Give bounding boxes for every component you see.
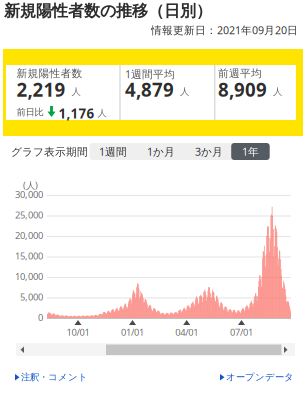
staticText: 1週間 [99,144,127,159]
button[interactable]: Scroll chart horizontally [16,343,295,356]
staticText: 人 [71,86,80,97]
staticText: 人 [273,86,282,97]
staticText: 2,219 [16,77,65,102]
staticText: 30,000 [15,188,43,201]
staticText: 人 [180,86,189,97]
button[interactable]: 1年 [231,143,270,160]
staticText: 前週平均 [218,67,262,80]
staticText: 5,000 [20,291,43,303]
staticText: 新規陽性者数 [16,67,82,80]
staticText: 4,879 [125,77,174,102]
staticText: 1週間平均 [125,67,175,81]
button[interactable]: 3か月 [187,143,231,160]
staticText: (人) [23,179,38,191]
staticText: 1,176 [58,104,94,122]
button[interactable]: 1週間 [91,143,135,160]
staticText: 07/01 [230,326,253,338]
button[interactable]: オープンデータ [220,371,294,383]
staticText: 1年 [242,144,259,159]
staticText: 3か月 [195,144,223,159]
staticText: 情報更新日：2021年09月20日 [151,23,298,37]
staticText: 1か月 [147,144,175,159]
staticText: 15,000 [15,250,43,262]
staticText: 注釈・コメント [21,371,88,383]
button[interactable]: 注釈・コメント [15,371,88,383]
button[interactable]: 1か月 [139,143,183,160]
staticText: 10/01 [66,326,89,338]
staticText: 10,000 [15,270,43,283]
staticText: 人 [97,107,106,119]
staticText: 04/01 [175,326,198,338]
staticText: オープンデータ [226,371,294,383]
staticText: 01/01 [121,326,144,338]
staticText: グラフ表示期間 [11,145,88,159]
staticText: 0 [38,311,43,324]
staticText: 25,000 [15,209,43,221]
staticText: 新規陽性者数の推移（日別） [4,1,212,21]
staticText: 前日比 [16,106,43,118]
staticText: 20,000 [15,229,43,242]
staticText: 8,909 [218,77,267,102]
